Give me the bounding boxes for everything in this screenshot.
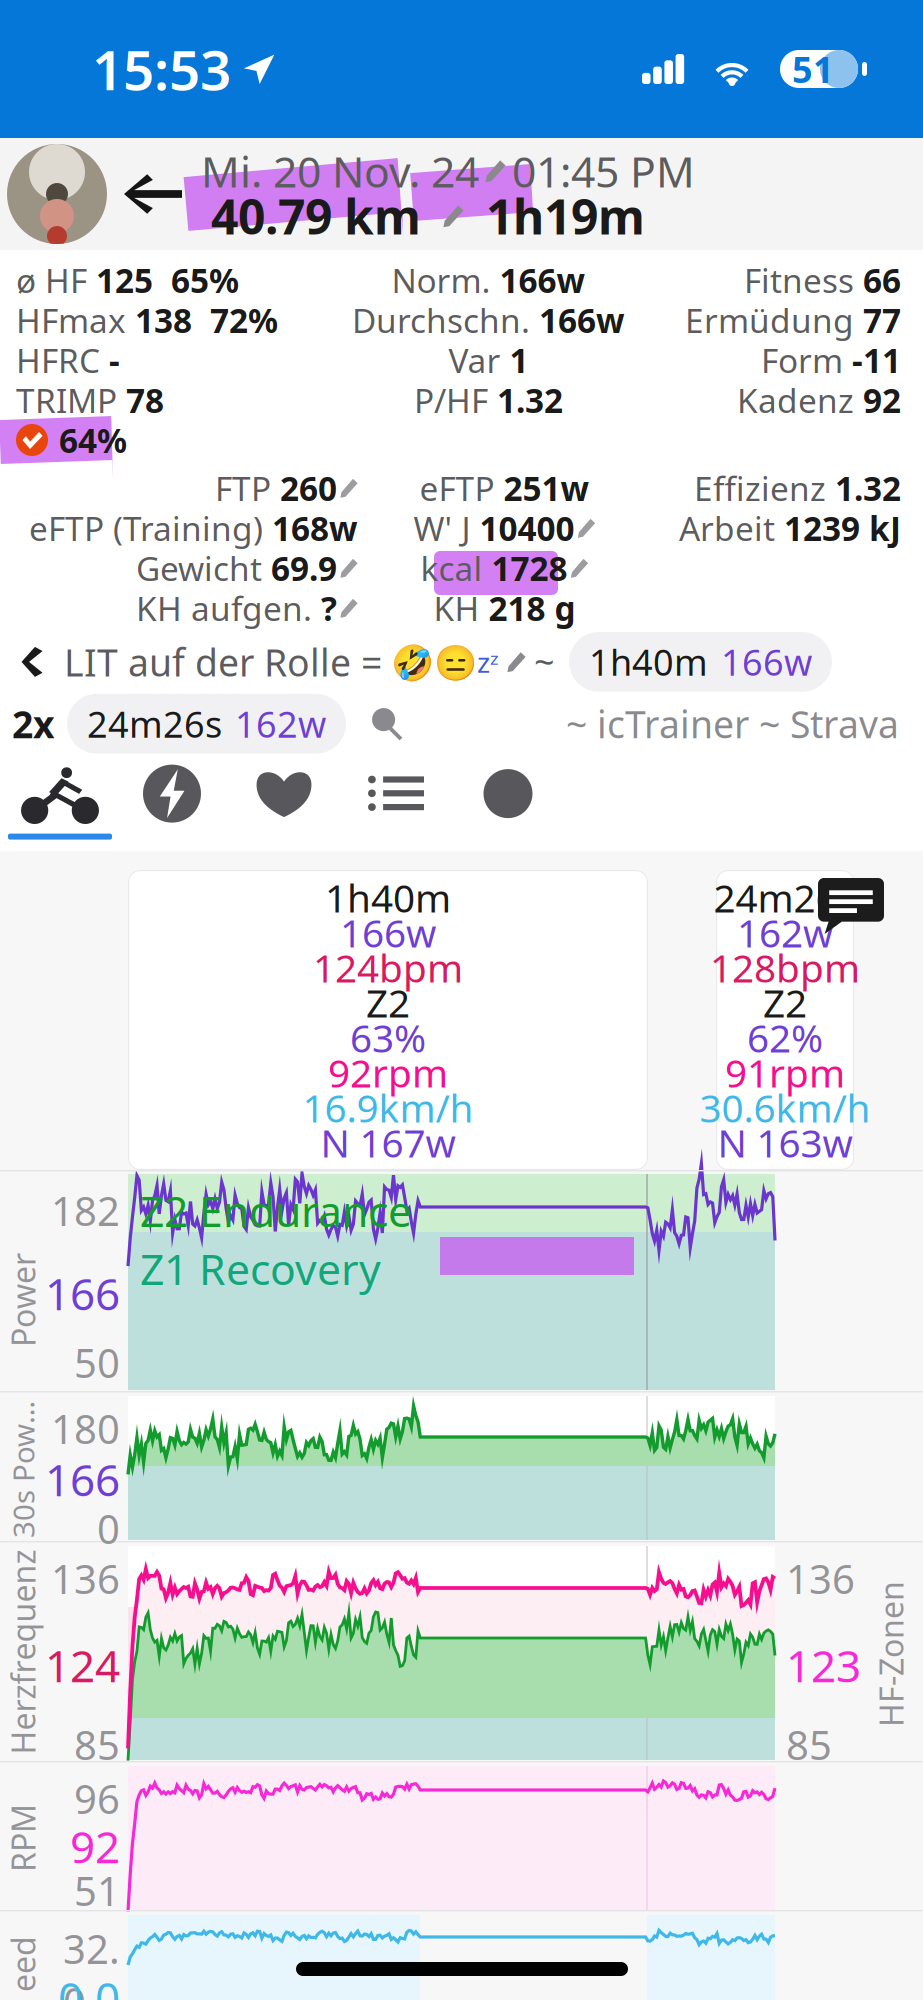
staticText: 10400 bbox=[479, 506, 574, 550]
staticText: HFRC bbox=[16, 338, 100, 382]
staticText: 69.9 bbox=[271, 546, 337, 590]
staticText: 166w bbox=[499, 258, 585, 302]
staticText: 218 g bbox=[488, 586, 575, 630]
staticText: eFTP (Training) bbox=[29, 506, 263, 550]
staticText: 1.32 bbox=[497, 378, 563, 422]
staticText: 92rpm bbox=[328, 1047, 448, 1098]
staticText: 166 bbox=[45, 1450, 120, 1508]
staticText: 91rpm bbox=[725, 1047, 845, 1098]
staticText: 182 bbox=[51, 1184, 120, 1237]
staticText: N 167w bbox=[320, 1117, 455, 1168]
staticText: 260 bbox=[280, 466, 337, 510]
staticText: Herzfrequenz bbox=[0, 1631, 125, 1673]
staticText: 166 bbox=[45, 1264, 120, 1322]
staticText: Power bbox=[0, 1279, 70, 1321]
staticText: eFTP bbox=[419, 466, 494, 510]
staticText: HFmax bbox=[16, 298, 126, 342]
staticText: Mi. 20 Nov. 24 bbox=[201, 143, 479, 199]
staticText: HF-Zonen bbox=[818, 1633, 923, 1675]
staticText: 136 bbox=[786, 1552, 855, 1605]
staticText: 32.0 bbox=[63, 1922, 120, 2000]
staticText: Ermüdung bbox=[685, 298, 854, 342]
staticText: 162w bbox=[737, 907, 833, 958]
staticText: Arbeit bbox=[679, 506, 775, 550]
staticText: 1728 bbox=[491, 546, 567, 590]
staticText: Fitness bbox=[744, 258, 854, 302]
staticText: 30s Power bbox=[0, 1447, 94, 1486]
staticText: Kadenz bbox=[737, 378, 854, 422]
staticText: 136 bbox=[51, 1552, 120, 1605]
staticText: ? bbox=[321, 586, 337, 630]
staticText: 123 bbox=[786, 1636, 861, 1694]
staticText: 66 bbox=[863, 258, 901, 302]
staticText: 125 65% bbox=[96, 258, 239, 302]
button[interactable]: Power bbox=[116, 756, 228, 832]
staticText: 166w bbox=[340, 907, 436, 958]
staticText: 168w bbox=[272, 506, 358, 550]
button[interactable]: Add bbox=[452, 756, 564, 832]
staticText: 24m26s bbox=[87, 700, 222, 748]
button[interactable]: Search bbox=[346, 700, 428, 748]
staticText: 251w bbox=[503, 466, 589, 510]
staticText: 40.79 km bbox=[211, 184, 421, 248]
staticText bbox=[843, 338, 852, 382]
button[interactable]: Back bbox=[107, 142, 199, 246]
staticText: FTP bbox=[215, 466, 271, 510]
staticText: Gewicht bbox=[136, 546, 262, 590]
staticText: 166w bbox=[721, 638, 812, 686]
button[interactable]: Heart rate bbox=[228, 756, 340, 832]
staticText: 63% bbox=[350, 1012, 426, 1063]
staticText: 51 bbox=[792, 45, 834, 93]
staticText: 🤣😑 bbox=[382, 639, 477, 685]
staticText: kcal bbox=[420, 546, 482, 590]
staticText: ~ bbox=[534, 638, 555, 686]
staticText: 180 bbox=[51, 1402, 120, 1455]
button[interactable]: Activity bbox=[4, 756, 116, 842]
staticText: Z2 Endurance bbox=[140, 1182, 412, 1239]
staticText: 1h40m bbox=[325, 872, 451, 923]
staticText: 128bpm bbox=[710, 942, 860, 993]
staticText: 78 bbox=[126, 378, 164, 422]
staticText: Norm. bbox=[391, 258, 490, 302]
staticText: 01:45 PM bbox=[512, 143, 695, 199]
staticText: ~ icTrainer ~ Strava bbox=[566, 699, 899, 748]
staticText: 0 bbox=[97, 1502, 120, 1555]
staticText: 166w bbox=[539, 298, 625, 342]
staticText: Var bbox=[448, 338, 500, 382]
staticText: 162w bbox=[235, 700, 326, 748]
staticText: Z1 Recovery bbox=[140, 1240, 381, 1297]
staticText: 138 72% bbox=[135, 298, 278, 342]
staticText: Form bbox=[761, 338, 843, 382]
staticText: 85 bbox=[786, 1718, 832, 1771]
button[interactable]: Laps bbox=[340, 756, 452, 832]
staticText: - bbox=[109, 338, 120, 382]
staticText: ø HF bbox=[16, 258, 87, 302]
staticText: -11 bbox=[852, 338, 901, 382]
staticText: N 163w bbox=[717, 1117, 852, 1168]
staticText: 15:53 bbox=[92, 33, 231, 105]
button[interactable]: Previous bbox=[0, 637, 64, 687]
staticText: W' J bbox=[413, 506, 470, 550]
button[interactable]: Profile bbox=[7, 144, 107, 244]
staticText: 50 bbox=[74, 1336, 120, 1389]
staticText: Effizienz bbox=[694, 466, 826, 510]
staticText: 30.6km/h bbox=[699, 1082, 870, 1133]
staticText: 51 bbox=[74, 1864, 120, 1917]
staticText: P/HF bbox=[414, 378, 488, 422]
staticText: Z2 bbox=[763, 977, 807, 1028]
staticText bbox=[479, 586, 488, 630]
staticText: Durchschn. bbox=[352, 298, 530, 342]
